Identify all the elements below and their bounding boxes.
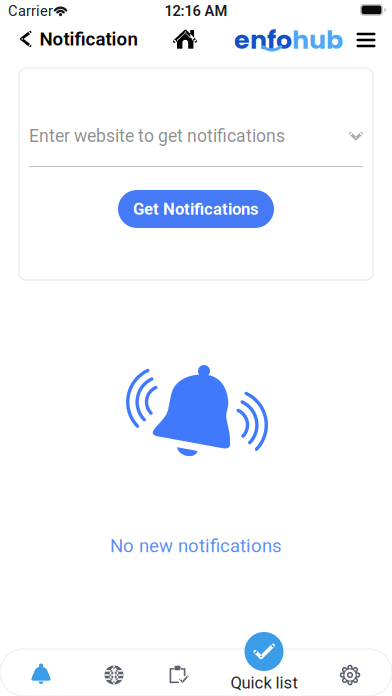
button[interactable]: Quick list bbox=[224, 632, 304, 694]
staticText: enfo bbox=[234, 22, 292, 58]
staticText: Carrier bbox=[8, 2, 53, 20]
staticText: Get Notifications bbox=[133, 199, 259, 219]
staticText: Enter website to get notifications bbox=[29, 126, 285, 146]
button[interactable]: Get Notifications bbox=[118, 190, 274, 228]
staticText: Notification bbox=[39, 28, 137, 50]
button[interactable]: Enter website to get notifications bbox=[29, 124, 363, 148]
staticText: hub bbox=[292, 22, 343, 58]
button[interactable]: Home bbox=[161, 22, 209, 56]
button[interactable]: Notification bbox=[14, 24, 144, 54]
staticText: 12:16 AM bbox=[164, 2, 227, 20]
button[interactable]: Menu bbox=[344, 22, 388, 58]
button[interactable]: Settings bbox=[328, 659, 372, 691]
staticText: No new notifications bbox=[110, 535, 282, 557]
staticText: Quick list bbox=[230, 673, 297, 692]
button[interactable]: Tasks bbox=[157, 658, 201, 692]
button[interactable]: Browse bbox=[92, 659, 136, 691]
button[interactable]: Notifications bbox=[19, 656, 63, 692]
